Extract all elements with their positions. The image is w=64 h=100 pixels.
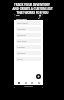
staticText: Category [17,28,26,31]
staticText: Notes [17,58,23,61]
button[interactable]: Category [16,27,41,33]
staticText: Quantity [17,34,26,37]
button[interactable]: Tab 2 [23,80,28,85]
button[interactable]: Quantity [16,33,41,39]
staticText: THAT WORKS FOR YOU [16,11,49,15]
button[interactable]: Item name [16,21,41,27]
button[interactable]: Tab 4 [36,80,41,85]
button[interactable]: Tab 1 [16,80,21,85]
button[interactable]: New item [16,16,41,20]
button[interactable]: Location [16,51,41,57]
button[interactable]: Notes [16,57,41,63]
button[interactable]: Tab 3 [29,80,34,85]
staticText: Unit price [17,40,27,43]
staticText: AND CREATE A CUSTOM LIST [12,7,53,11]
staticText: Item name [17,22,28,25]
button[interactable]: Supplier [16,45,41,51]
button[interactable]: Add item [36,74,41,79]
staticText: ▮▮ [39,14,41,16]
button[interactable]: Unit price [16,39,41,45]
staticText: 9:41 [16,14,20,16]
staticText: ✓ [38,17,41,20]
staticText: TRACK YOUR INVENTORY [14,3,50,7]
staticText: New item [16,17,27,20]
staticText: Location [17,52,26,55]
staticText: Supplier [17,46,26,49]
